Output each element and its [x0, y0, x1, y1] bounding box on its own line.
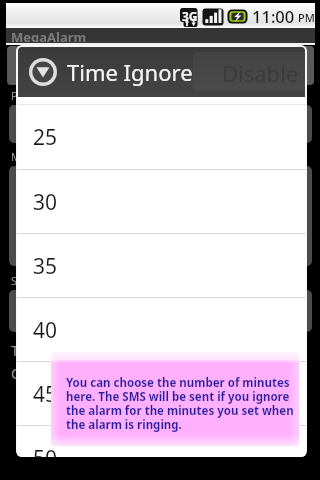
button[interactable]: 35 — [17, 234, 306, 298]
button[interactable]: 50 — [17, 426, 306, 457]
button[interactable]: 45 — [17, 362, 306, 426]
staticText: Time Ignore — [67, 57, 193, 87]
staticText: SMS — [11, 273, 34, 288]
staticText: 50 — [33, 444, 58, 457]
button[interactable] — [9, 105, 312, 143]
button[interactable]: 25 — [17, 105, 306, 170]
staticText: Enable — [49, 51, 119, 81]
button[interactable]: Disable — [160, 46, 314, 85]
staticText: MegaAlarm — [11, 28, 87, 42]
button[interactable]: Enable — [7, 46, 160, 85]
staticText: 30 — [33, 188, 58, 217]
button[interactable]: Open list — [29, 58, 57, 86]
staticText: Mode — [11, 149, 41, 164]
button[interactable] — [9, 290, 312, 332]
staticText: Play — [11, 88, 33, 103]
staticText: Contact — [11, 364, 62, 383]
staticText: Disable — [222, 58, 299, 88]
staticText: 3G — [182, 8, 198, 24]
staticText: You can choose the number of minutes her… — [66, 375, 304, 432]
button[interactable] — [9, 166, 312, 266]
staticText: 45 — [33, 380, 58, 409]
staticText: 25 — [33, 123, 58, 152]
button[interactable]: 40 — [17, 298, 306, 362]
staticText: Time Ignore — [11, 341, 91, 360]
button[interactable]: 30 — [17, 170, 306, 234]
staticText: PM — [298, 10, 315, 25]
staticText: Disable — [199, 51, 276, 81]
staticText: 35 — [33, 252, 58, 281]
staticText: 40 — [33, 316, 58, 345]
staticText: 11:00 — [252, 5, 295, 27]
